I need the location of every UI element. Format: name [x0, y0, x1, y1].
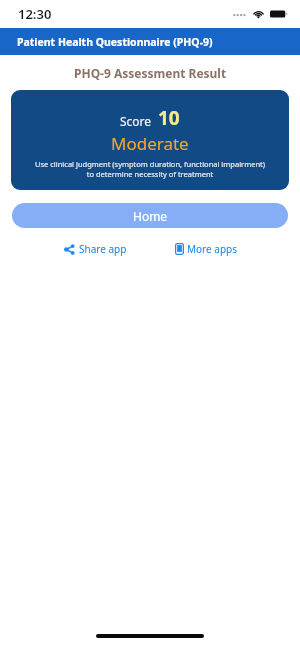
staticText: More apps [187, 242, 237, 256]
other: More apps [175, 243, 184, 255]
staticText: Share app [79, 242, 127, 256]
staticText: Moderate [111, 132, 189, 155]
staticText: 12:30 [18, 5, 52, 23]
button[interactable]: Share [60, 239, 131, 259]
staticText: 10 [158, 105, 180, 131]
button[interactable]: Home [12, 203, 288, 228]
staticText: Use clinical judgment (symptom duration,… [14, 159, 286, 179]
other: Share [64, 244, 75, 255]
staticText: Home [133, 208, 168, 224]
staticText: Score [120, 113, 152, 129]
button[interactable]: More apps [171, 239, 241, 259]
staticText: Patient Health Questionnaire (PHQ-9) [17, 35, 213, 49]
staticText: PHQ-9 Assessment Result [74, 65, 227, 81]
